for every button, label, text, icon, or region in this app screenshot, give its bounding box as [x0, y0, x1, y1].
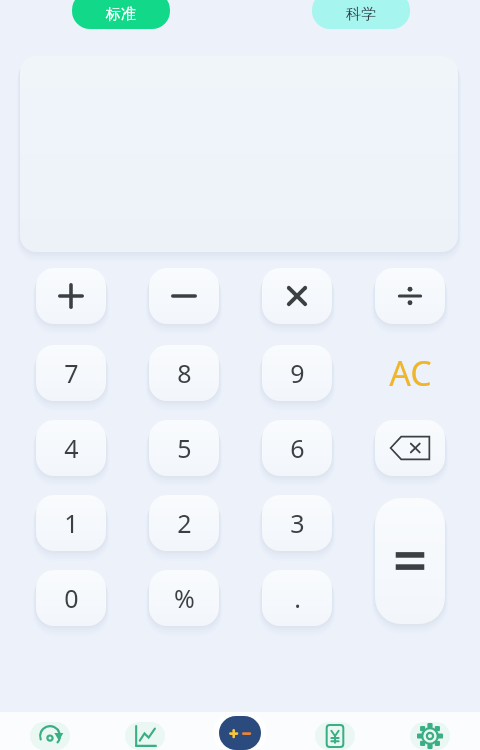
button[interactable]: 7: [36, 345, 106, 401]
button[interactable]: 2: [149, 495, 219, 551]
button[interactable]: AC: [375, 345, 445, 401]
button[interactable]: 4: [36, 420, 106, 476]
staticText: 标准: [106, 5, 136, 24]
staticText: 0: [64, 581, 79, 615]
staticText: %: [174, 581, 195, 615]
button[interactable]: Equals: [375, 498, 445, 624]
button[interactable]: 3: [262, 495, 332, 551]
button[interactable]: 9: [262, 345, 332, 401]
button[interactable]: 5: [149, 420, 219, 476]
button[interactable]: Settings: [410, 722, 450, 750]
staticText: 科学: [346, 5, 376, 24]
button[interactable]: 标准: [72, 0, 170, 29]
staticText: 8: [177, 356, 192, 390]
button[interactable]: Calculator: [214, 716, 266, 750]
staticText: 5: [177, 431, 192, 465]
button[interactable]: 8: [149, 345, 219, 401]
button[interactable]: Backspace: [375, 420, 445, 476]
button[interactable]: History: [30, 722, 70, 750]
button[interactable]: Divide: [375, 268, 445, 324]
staticText: 2: [177, 506, 192, 540]
staticText: AC: [389, 350, 432, 396]
button[interactable]: Currency: [315, 722, 355, 750]
staticText: .: [294, 581, 301, 615]
staticText: 6: [290, 431, 305, 465]
staticText: 9: [290, 356, 305, 390]
staticText: 3: [290, 506, 305, 540]
button[interactable]: Plus: [36, 268, 106, 324]
button[interactable]: Chart: [125, 722, 165, 750]
staticText: 4: [64, 431, 79, 465]
button[interactable]: .: [262, 570, 332, 626]
button[interactable]: 科学: [312, 0, 410, 29]
button[interactable]: 1: [36, 495, 106, 551]
button[interactable]: Minus: [149, 268, 219, 324]
button[interactable]: Multiply: [262, 268, 332, 324]
staticText: 1: [64, 506, 79, 540]
button[interactable]: %: [149, 570, 219, 626]
staticText: 7: [64, 356, 79, 390]
button[interactable]: 0: [36, 570, 106, 626]
button[interactable]: 6: [262, 420, 332, 476]
